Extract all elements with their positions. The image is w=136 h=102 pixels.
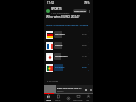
staticText: SPORTS: [57, 90, 64, 92]
button[interactable]: More options: [87, 9, 91, 13]
staticText: Portugal: [55, 66, 65, 69]
staticText: 37%: [82, 33, 87, 36]
button[interactable]: Shorts: [53, 94, 63, 102]
staticText: 29%: [82, 44, 87, 47]
button[interactable]: Subscribed: [73, 9, 87, 13]
staticText: 2.3K votes: [47, 80, 59, 83]
staticText: Who wins EURO 2024?: [46, 15, 80, 19]
staticText: EURO 2024 FINAL LIVE NOW: [57, 87, 83, 90]
button[interactable]: Pause: [83, 87, 88, 92]
staticText: You: [86, 99, 90, 101]
button[interactable]: France: [44, 41, 93, 52]
staticText: Switzerland: [55, 55, 68, 58]
button[interactable]: You: [83, 94, 93, 102]
staticText: France: [55, 44, 63, 47]
button[interactable]: Create: [63, 94, 73, 102]
button[interactable]: Close: [88, 87, 93, 92]
button[interactable]: Subscriptions: [73, 94, 83, 102]
staticText: Shorts: [55, 99, 61, 101]
staticText: Subscribed: [74, 10, 86, 13]
staticText: 1.2M subscribers: [51, 12, 70, 15]
staticText: 11%: [82, 55, 87, 58]
button[interactable]: EURO 2024 FINAL LIVE NOW: [44, 85, 93, 93]
staticText: 17:52: [47, 1, 55, 5]
staticText: Germany: [55, 33, 65, 36]
staticText: https://youtube.com/live/8r...q1pm0: [46, 23, 89, 26]
staticText: SPORTS: [51, 7, 62, 11]
button[interactable]: Switzerland: [44, 52, 93, 63]
staticText: 23%: [82, 66, 87, 69]
staticText: 78%: [84, 1, 90, 5]
staticText: Subscriptions: [73, 99, 83, 101]
button[interactable]: Germany: [44, 30, 93, 41]
button[interactable]: Home: [44, 94, 53, 102]
button[interactable]: https://youtube.com/live/8r...q1pm0: [46, 23, 89, 26]
button[interactable]: Portugal: [44, 63, 93, 74]
staticText: Home: [46, 99, 52, 101]
